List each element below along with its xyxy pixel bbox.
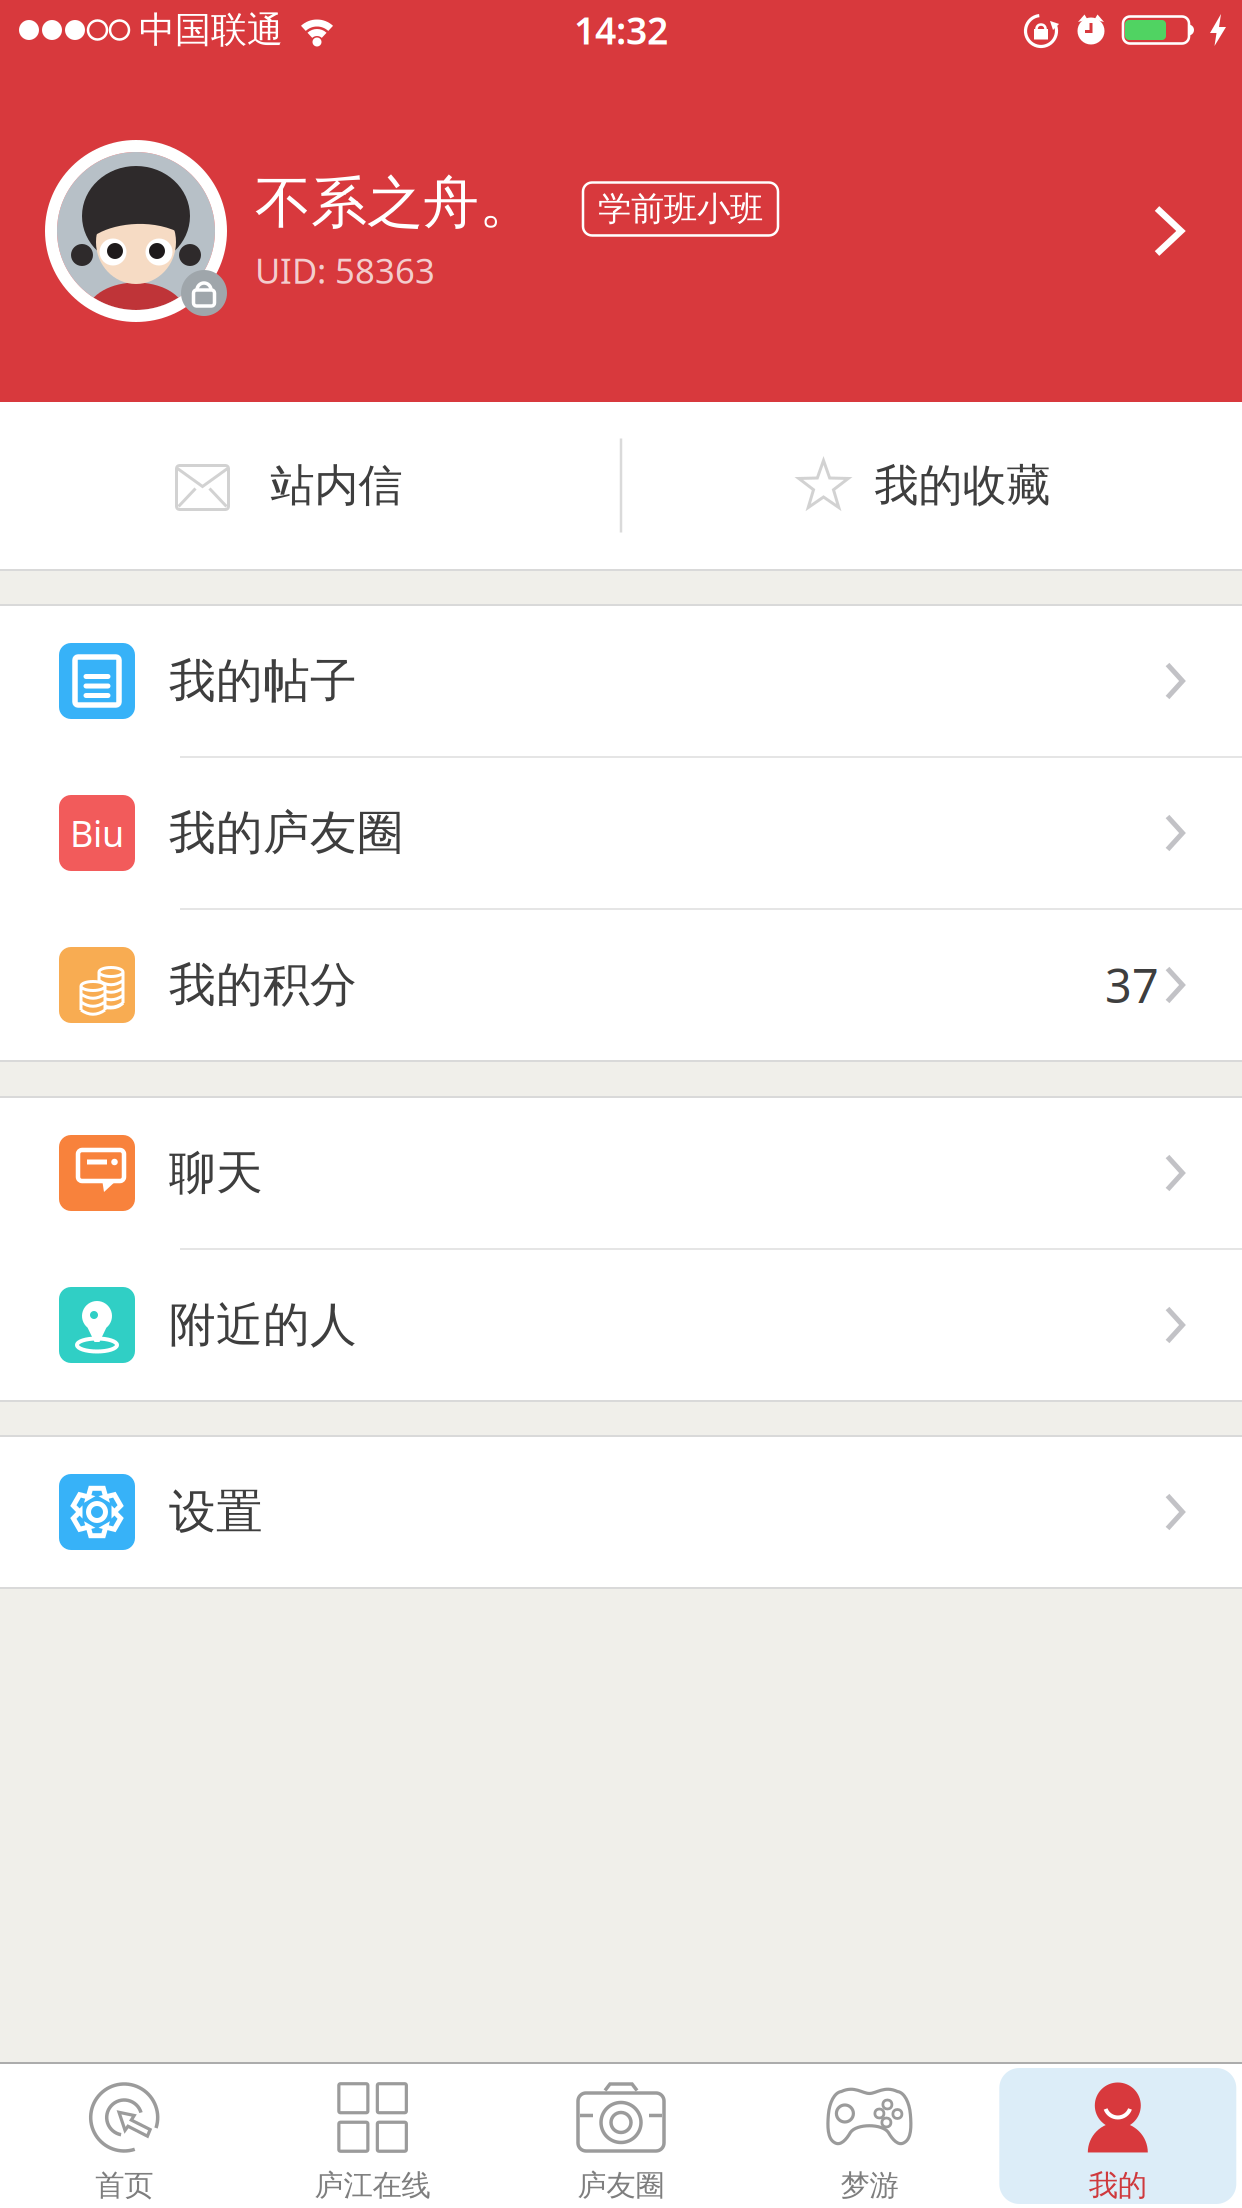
staticText: 我的	[1089, 2167, 1147, 2203]
staticText: 聊天	[169, 1144, 263, 1202]
staticText: 站内信	[270, 458, 402, 512]
button[interactable]: 我的帖子	[0, 606, 1242, 756]
staticText: 我的收藏	[874, 458, 1050, 512]
button[interactable]: 梦游	[745, 2064, 994, 2208]
staticText: 附近的人	[169, 1296, 357, 1354]
button[interactable]: 庐友圈	[497, 2064, 745, 2208]
staticText: 37	[1105, 954, 1159, 1016]
button[interactable]: 我的积分	[0, 910, 1242, 1060]
staticText: 庐江在线	[315, 2167, 431, 2203]
staticText: UID: 58363	[255, 247, 435, 293]
button[interactable]: 附近的人	[0, 1250, 1242, 1400]
button[interactable]: 我的	[994, 2064, 1242, 2208]
button[interactable]: 我的收藏	[621, 402, 1242, 569]
button[interactable]: 站内信	[0, 402, 621, 569]
button[interactable]: 设置	[0, 1437, 1242, 1587]
staticText: 14:32	[574, 5, 668, 55]
button[interactable]: 庐江在线	[248, 2064, 497, 2208]
staticText: 我的帖子	[169, 652, 357, 710]
staticText: 不系之舟。	[255, 169, 535, 237]
staticText: 中国联通	[139, 8, 283, 52]
button[interactable]: Biu	[0, 758, 1242, 908]
staticText: 梦游	[840, 2167, 898, 2203]
button[interactable]: 不系之舟。	[0, 60, 1242, 322]
staticText: 设置	[169, 1483, 263, 1541]
staticText: 我的庐友圈	[169, 804, 404, 862]
button[interactable]: 聊天	[0, 1098, 1242, 1248]
staticText: 首页	[95, 2167, 153, 2203]
button[interactable]: 首页	[0, 2064, 248, 2208]
staticText: Biu	[70, 809, 124, 857]
staticText: 庐友圈	[577, 2167, 664, 2203]
staticText: 学前班小班	[598, 188, 763, 229]
staticText: 我的积分	[169, 956, 357, 1014]
